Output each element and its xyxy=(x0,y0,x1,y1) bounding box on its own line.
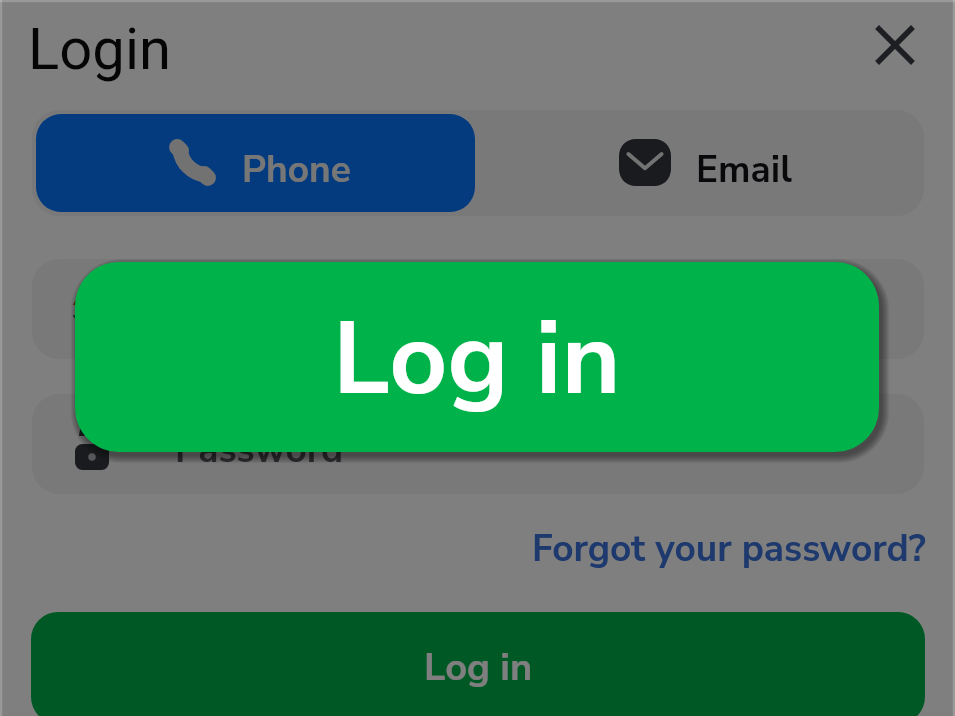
staticText: Log in xyxy=(424,642,533,694)
button[interactable]: Forgot your password? xyxy=(500,523,926,575)
staticText: Email xyxy=(696,145,793,195)
button[interactable]: Email xyxy=(480,114,920,212)
button[interactable]: Log in xyxy=(31,612,925,716)
button[interactable]: Close xyxy=(871,21,919,69)
staticText: Log in xyxy=(333,291,621,429)
staticText: Login xyxy=(28,15,172,83)
staticText: Forgot your password? xyxy=(532,524,926,574)
staticText: Phone number xyxy=(205,290,457,340)
staticText: Phone xyxy=(242,145,351,195)
button[interactable]: Log in xyxy=(75,262,879,452)
button[interactable]: Phone xyxy=(36,114,475,212)
staticText: Password xyxy=(175,425,344,475)
button[interactable]: +91 xyxy=(32,259,924,359)
button[interactable]: Password xyxy=(32,394,924,494)
